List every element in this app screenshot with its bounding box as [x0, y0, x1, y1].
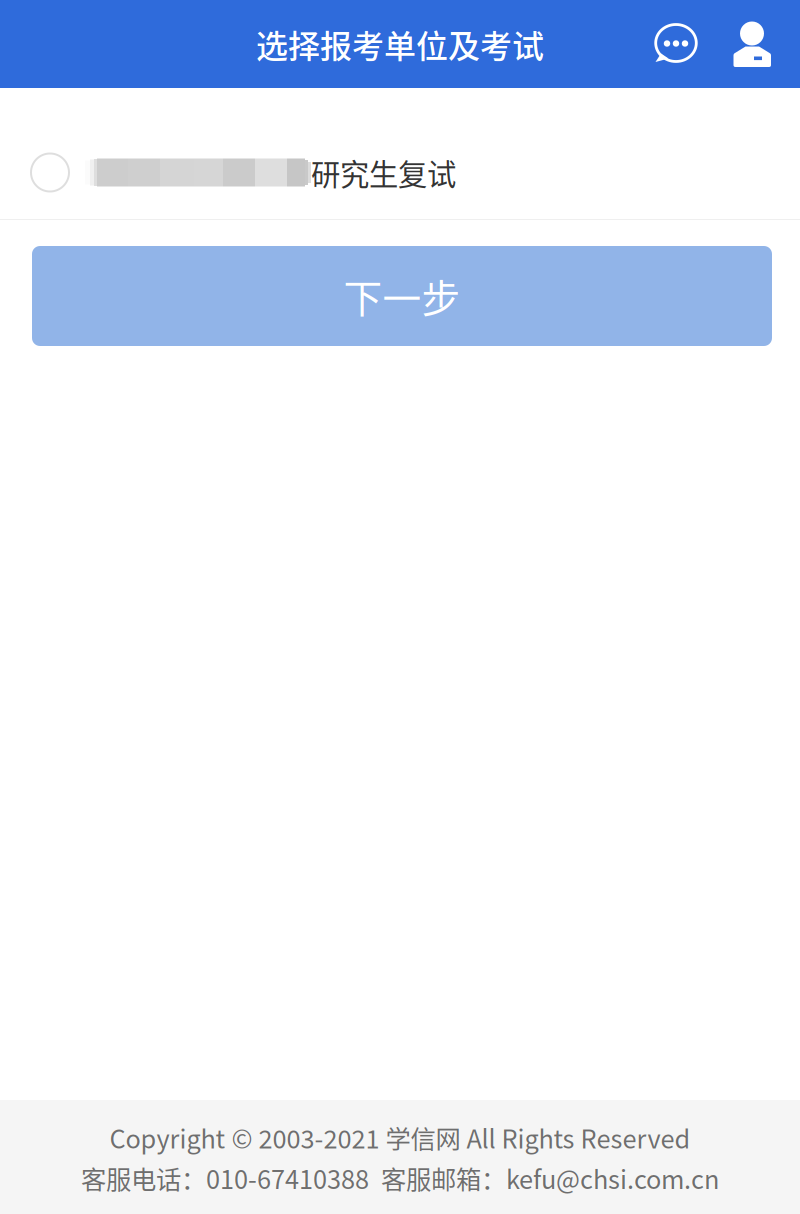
button[interactable]: 下一步 [32, 246, 772, 346]
staticText: Copyright © 2003-2021 学信网 All Rights Res… [109, 1119, 690, 1156]
staticText: 下一步 [343, 268, 460, 324]
staticText: 研究生复试 [311, 151, 456, 194]
staticText: 选择报考单位及考试 [256, 21, 544, 67]
button[interactable]: 在线客服 [648, 9, 704, 79]
button[interactable]: 研究生复试 [0, 126, 800, 219]
staticText: 客服电话：010-67410388 客服邮箱：kefu@chsi.com.cn [81, 1160, 719, 1196]
button[interactable]: 个人中心 [724, 9, 780, 79]
